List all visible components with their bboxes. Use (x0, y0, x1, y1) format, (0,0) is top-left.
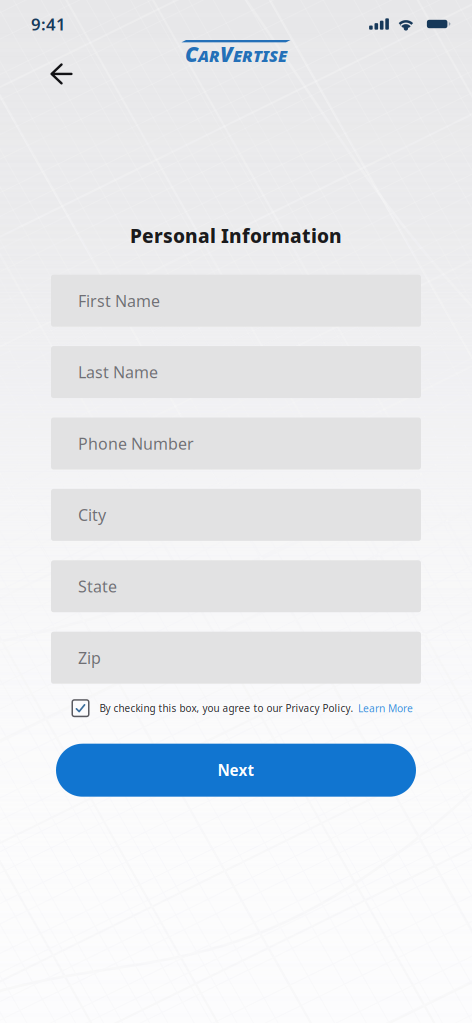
button[interactable]: Phone Number (51, 417, 421, 469)
staticText: ERTISE (233, 44, 287, 67)
staticText: AR (198, 44, 220, 67)
staticText: First Name (78, 290, 160, 312)
staticText: Zip (78, 647, 101, 669)
button[interactable]: Back (38, 63, 85, 90)
button[interactable]: Agree to Privacy Policy (72, 698, 89, 719)
staticText: C (185, 40, 198, 68)
button[interactable]: Learn More (353, 701, 413, 715)
staticText: Learn More (358, 701, 413, 715)
staticText: State (78, 575, 117, 597)
staticText: Personal Information (130, 223, 342, 249)
staticText: City (78, 504, 106, 526)
staticText: Next (217, 760, 254, 780)
staticText: By checking this box, you agree to our P… (99, 701, 353, 715)
button[interactable]: State (51, 560, 421, 612)
button[interactable]: Next (56, 744, 416, 797)
staticText: 9:41 (31, 13, 66, 35)
button[interactable]: Zip (51, 632, 421, 684)
staticText: V (220, 40, 233, 68)
staticText: Phone Number (78, 433, 194, 454)
staticText: Last Name (78, 361, 158, 383)
button[interactable]: First Name (51, 275, 421, 327)
button[interactable]: Last Name (51, 346, 421, 398)
button[interactable]: City (51, 489, 421, 541)
